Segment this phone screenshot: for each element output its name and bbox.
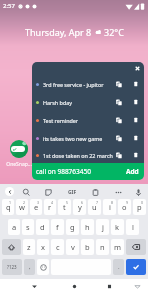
button[interactable]: s [22,219,34,235]
button[interactable]: i [103,199,116,215]
button[interactable]: ?123 [2,259,22,275]
staticText: 2 [23,200,26,205]
button[interactable]: b [81,239,94,255]
button[interactable]: OneSnap app [10,140,28,158]
staticText: 1 [9,200,12,205]
button[interactable]: Delete [131,79,141,89]
button[interactable]: o [118,199,131,215]
button[interactable]: Copy [114,150,124,160]
staticText: l [132,222,134,232]
staticText: Test reminder [43,117,79,124]
staticText: m [114,242,122,252]
button[interactable]: , [24,259,35,275]
staticText: a [12,222,17,232]
button[interactable]: Shift [2,239,21,255]
button[interactable]: m [111,239,124,255]
button[interactable]: Delete [131,150,141,160]
button[interactable]: Clipboard [89,186,101,198]
button[interactable]: g [66,219,79,235]
staticText: q [6,202,11,212]
button[interactable]: Delete [131,133,141,143]
button[interactable]: Back [5,187,14,196]
button[interactable]: Voice input [132,186,144,198]
button[interactable]: f [51,219,64,235]
staticText: k [115,222,120,232]
button[interactable]: Backspace [126,239,146,255]
button[interactable]: d [36,219,49,235]
staticText: Thursday, Apr 8 [25,26,92,38]
staticText: j [102,222,104,232]
staticText: h [85,222,90,232]
button[interactable]: v [66,239,79,255]
staticText: y [78,202,82,212]
button[interactable]: Copy [114,79,124,89]
staticText: 7 [96,200,99,205]
button[interactable]: Delete [131,115,141,125]
button[interactable]: p [133,199,146,215]
staticText: Harsh bday [43,99,72,106]
button[interactable]: Search [20,186,32,198]
staticText: i [109,202,111,212]
staticText: w [19,202,25,212]
button[interactable]: a [8,219,20,235]
button[interactable]: j [96,219,109,235]
staticText: ?123 [7,264,17,270]
button[interactable]: Stickers [42,186,54,198]
button[interactable]: h [81,219,94,235]
staticText: u [92,202,97,212]
button[interactable]: Home [68,280,80,292]
button[interactable]: e [30,199,42,215]
staticText: e [34,202,39,212]
button[interactable]: c [51,239,64,255]
button[interactable]: GIF [66,189,78,196]
staticText: d [40,222,45,232]
button[interactable]: Close [133,64,142,73]
button[interactable]: r [44,199,56,215]
staticText: Add [126,167,139,176]
staticText: g [70,222,75,232]
button[interactable]: Copy [114,97,124,107]
staticText: 8 [111,200,114,205]
button[interactable]: q [2,199,14,215]
staticText: OneSnap... [6,161,32,168]
button[interactable]: Delete [131,97,141,107]
staticText: f [56,222,59,232]
staticText: x [41,242,45,252]
button[interactable]: Add [123,165,142,178]
button[interactable]: l [126,219,139,235]
staticText: r [48,202,52,212]
staticText: p [137,202,142,212]
staticText: v [71,242,75,252]
staticText: 0 [141,200,144,205]
button[interactable]: Enter [126,259,146,275]
button[interactable]: Back [28,280,40,292]
button[interactable]: Hide keyboard [131,280,143,292]
button[interactable]: 3rd free service - jupitor [32,75,144,93]
button[interactable]: u [88,199,101,215]
staticText: c [56,242,60,252]
button[interactable]: Harsh bday [32,93,144,111]
staticText: 2:57 [3,2,15,10]
staticText: 4 [51,200,54,205]
button[interactable]: k [111,219,124,235]
button[interactable]: Recents [103,280,115,292]
button[interactable]: Copy [114,115,124,125]
button[interactable]: n [96,239,109,255]
button[interactable]: . [113,259,124,275]
button[interactable]: y [73,199,86,215]
button[interactable]: Test reminder [32,111,144,129]
staticText: 3 [37,200,40,205]
staticText: . [118,263,120,271]
button[interactable]: Copy [114,133,124,143]
staticText: s [26,222,30,232]
button[interactable]: x [37,239,49,255]
button[interactable]: 1st dose taken on 22 march [32,147,144,163]
button[interactable]: z [23,239,35,255]
button[interactable]: w [16,199,28,215]
button[interactable]: t [58,199,71,215]
button[interactable]: its takes two new game [32,129,144,147]
staticText: 1st dose taken on 22 march [43,152,113,159]
button[interactable]: More options [112,186,124,198]
button[interactable]: Emoji [37,259,49,275]
